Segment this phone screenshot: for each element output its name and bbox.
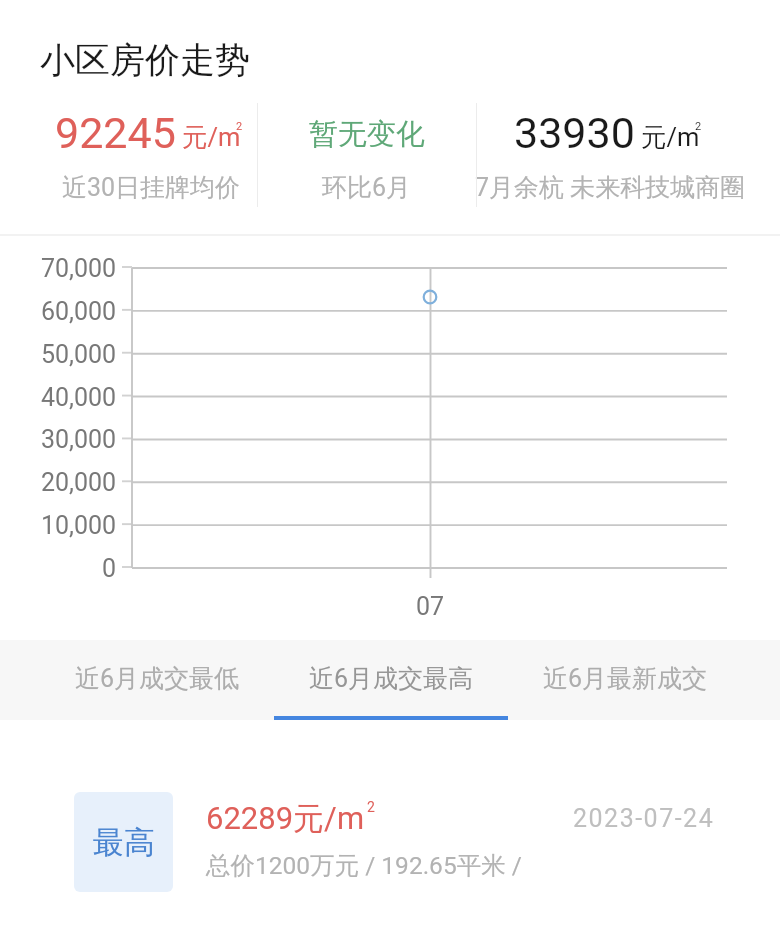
staticText: 60,000 (41, 297, 117, 326)
staticText: 92245 (55, 108, 176, 158)
staticText: 70,000 (41, 254, 117, 283)
staticText: 2023-07-24 (573, 804, 715, 833)
staticText: 2 (695, 120, 702, 133)
staticText: 近30日挂牌均价 (62, 172, 241, 203)
staticText: 33930 (514, 108, 635, 158)
staticText: 07 (416, 592, 445, 621)
staticText: 0 (102, 554, 117, 583)
staticText: 元/m (641, 121, 700, 153)
staticText: 10,000 (41, 511, 117, 540)
staticText: 20,000 (41, 468, 117, 497)
staticText: 2 (236, 120, 243, 133)
staticText: 近6月成交最高 (309, 663, 474, 694)
staticText: 小区房价走势 (40, 38, 250, 82)
staticText: 近6月最新成交 (543, 663, 708, 694)
button[interactable]: 近6月成交最高 (274, 640, 508, 720)
staticText: 40,000 (41, 383, 117, 412)
staticText: 50,000 (41, 340, 117, 369)
staticText: 7月余杭 未来科技城商圈 (475, 172, 746, 203)
staticText: 30,000 (41, 425, 117, 454)
button[interactable]: 最高 (0, 792, 780, 892)
staticText: 2 (367, 799, 375, 815)
staticText: 元/m (182, 121, 241, 153)
button[interactable]: 近6月最新成交 (508, 640, 742, 720)
staticText: 近6月成交最低 (75, 663, 240, 694)
staticText: 环比6月 (322, 172, 412, 203)
staticText: 总价1200万元 / 192.65平米 / (206, 850, 522, 881)
staticText: 62289元/m (206, 799, 365, 838)
staticText: 最高 (93, 823, 155, 862)
staticText: 暂无变化 (309, 116, 425, 153)
button[interactable]: 近6月成交最低 (40, 640, 274, 720)
